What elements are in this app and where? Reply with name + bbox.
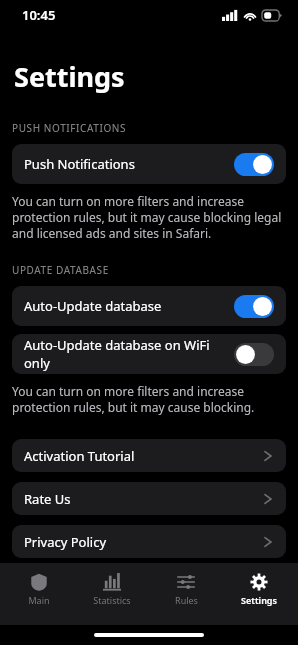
staticText: Auto-Update database xyxy=(24,297,234,315)
staticText: Statistics xyxy=(93,594,131,606)
button[interactable]: Statistics xyxy=(77,569,147,610)
other: Main xyxy=(30,573,48,591)
button[interactable]: Main xyxy=(4,569,74,610)
staticText: Terms of Use xyxy=(24,576,264,594)
button[interactable]: Auto-Update database xyxy=(12,286,286,326)
staticText: Rate Us xyxy=(24,490,264,508)
staticText: UPDATE DATABASE xyxy=(12,263,109,277)
staticText: You can turn on more filters and increas… xyxy=(12,193,286,241)
button[interactable]: Activation Tutorial xyxy=(12,439,286,472)
staticText: 10:45 xyxy=(22,6,56,24)
button[interactable]: Rate Us xyxy=(12,482,286,515)
button[interactable]: Auto-Update database on WiFi only xyxy=(12,334,286,374)
staticText: Main xyxy=(28,594,50,606)
staticText: Settings xyxy=(241,594,277,606)
other: Statistics xyxy=(103,573,121,591)
staticText: Auto-Update database on WiFi only xyxy=(24,336,234,372)
staticText: Activation Tutorial xyxy=(24,447,264,465)
staticText: PUSH NOTIFICATIONS xyxy=(12,121,127,135)
staticText: You can turn on more filters and increas… xyxy=(12,383,286,415)
staticText: Push Notifications xyxy=(24,155,234,173)
staticText: Privacy Policy xyxy=(24,533,264,551)
button[interactable]: Push Notifications xyxy=(12,144,286,184)
button[interactable]: Terms of Use xyxy=(12,568,286,601)
button[interactable]: Privacy Policy xyxy=(12,525,286,558)
staticText: Settings xyxy=(14,58,125,95)
button[interactable]: Rules xyxy=(151,569,221,610)
button[interactable]: Settings xyxy=(224,569,294,610)
other: Settings xyxy=(250,573,268,591)
staticText: Rules xyxy=(175,594,198,606)
other: Rules xyxy=(177,573,195,591)
